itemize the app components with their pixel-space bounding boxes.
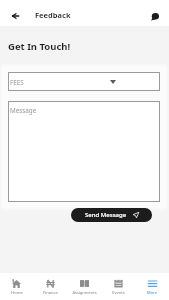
button[interactable]: Message [8,101,160,202]
button[interactable]: Events [101,273,135,300]
staticText: Finance [43,290,58,295]
button[interactable]: Messages [148,10,162,24]
staticText: Feedback [35,10,71,20]
button[interactable]: Assignments [67,273,101,300]
staticText: Message [10,106,37,115]
staticText: More [147,290,157,295]
staticText: Get In Touch! [8,40,71,53]
button[interactable]: Send Message [71,208,152,222]
button[interactable]: More [135,273,169,300]
staticText: Events [112,290,125,295]
staticText: FEES [10,78,24,87]
staticText: Send Message [85,211,127,219]
staticText: Home [11,290,23,295]
staticText: Assignments [72,290,97,295]
button[interactable]: Back [7,8,21,22]
button[interactable]: Home [0,273,33,300]
button[interactable]: Finance [33,273,67,300]
button[interactable]: FEES [8,72,160,91]
